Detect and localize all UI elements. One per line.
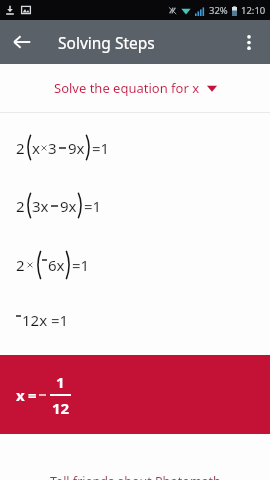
staticText: =1 <box>92 138 110 158</box>
staticText: 2 <box>16 138 25 158</box>
staticText: Solve the equation for x <box>54 79 200 97</box>
staticText: 12 <box>52 398 70 418</box>
staticText: x <box>16 385 25 405</box>
staticText: Tell friends about Photomath <box>50 473 221 480</box>
staticText: 9x <box>68 138 85 158</box>
staticText: 2 <box>16 196 25 216</box>
button[interactable]: 2 <box>0 134 270 161</box>
staticText: =1 <box>84 196 102 216</box>
button[interactable]: More options <box>233 26 265 58</box>
button[interactable]: 2 <box>0 250 270 280</box>
staticText: 6x <box>48 255 65 275</box>
staticText: Solving Steps <box>58 32 155 53</box>
button[interactable]: Tell friends about Photomath <box>0 468 270 480</box>
staticText: 12:10 <box>241 4 266 17</box>
staticText: 9x <box>60 196 77 216</box>
staticText: x <box>32 138 40 158</box>
staticText: 2 <box>16 255 25 275</box>
staticText: =1 <box>51 310 69 330</box>
staticText: 3 <box>48 138 57 158</box>
button[interactable]: 2 <box>0 192 270 219</box>
button[interactable]: x <box>0 355 270 434</box>
staticText: 1 <box>56 372 65 392</box>
button[interactable]: Solve the equation for x <box>0 64 270 112</box>
staticText: 12x <box>22 310 48 330</box>
staticText: 32% <box>209 4 228 17</box>
button[interactable]: Back <box>6 26 38 58</box>
staticText: 3x <box>32 196 49 216</box>
button[interactable]: 12x <box>0 310 270 330</box>
staticText: = <box>28 385 37 405</box>
staticText: =1 <box>72 255 90 275</box>
